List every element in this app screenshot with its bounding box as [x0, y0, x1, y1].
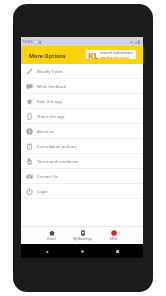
button[interactable]: About us — [21, 124, 143, 139]
button[interactable]: Write feedback — [21, 79, 143, 94]
button[interactable]: Home — [78, 247, 87, 256]
button[interactable]: Back — [42, 247, 51, 256]
button[interactable]: Cancellation policies — [21, 139, 143, 154]
staticText: 18:04 — [22, 39, 33, 45]
staticText: About us — [37, 129, 55, 135]
button[interactable]: More — [98, 227, 129, 244]
button[interactable]: Modify Ticket — [21, 64, 143, 79]
button[interactable]: Share this app — [21, 109, 143, 124]
button[interactable]: Recent apps — [113, 247, 122, 256]
button[interactable]: Login — [21, 184, 143, 199]
staticText: Contact Us — [37, 174, 58, 180]
button[interactable]: Contact Us — [21, 169, 143, 184]
staticText: More — [110, 237, 118, 241]
staticText: Modify Ticket — [37, 69, 63, 75]
staticText: My Bookings — [73, 237, 92, 241]
staticText: Terms and conditions — [37, 159, 79, 165]
button[interactable]: My Bookings — [67, 227, 98, 244]
staticText: www.kltravelsolutions.in — [100, 56, 130, 59]
staticText: KL — [88, 50, 99, 59]
button[interactable]: Rate this app — [21, 94, 143, 109]
staticText: Rate this app — [37, 99, 63, 105]
staticText: Share this app — [37, 114, 65, 120]
staticText: Home — [47, 237, 56, 241]
staticText: Cancellation policies — [37, 144, 77, 150]
staticText: More Options — [29, 52, 66, 59]
staticText: travel solutions — [100, 50, 133, 56]
button[interactable]: Home — [36, 227, 67, 244]
staticText: Write feedback — [37, 84, 66, 90]
staticText: Login — [37, 189, 48, 195]
button[interactable]: Terms and conditions — [21, 154, 143, 169]
